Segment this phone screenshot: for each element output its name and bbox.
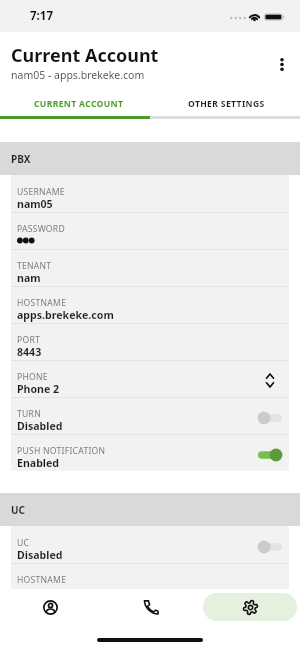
staticText: HOSTNAME xyxy=(17,297,67,309)
staticText: HOSTNAME xyxy=(17,574,67,586)
staticText: 7:17 xyxy=(30,8,53,24)
button[interactable]: CURRENT ACCOUNT xyxy=(0,95,150,119)
staticText: Disabled xyxy=(17,419,63,433)
staticText: PASSWORD xyxy=(17,223,65,235)
staticText: PUSH NOTIFICATION xyxy=(17,445,106,457)
button[interactable]: TURN xyxy=(11,397,289,434)
staticText: USERNAME xyxy=(17,186,65,198)
staticText: PORT xyxy=(17,334,41,346)
button[interactable]: OTHER SETTINGS xyxy=(150,95,300,119)
staticText: UC xyxy=(11,503,25,517)
staticText: nam xyxy=(17,271,41,285)
staticText: nam05 - apps.brekeke.com xyxy=(11,68,145,82)
staticText: apps.brekeke.com xyxy=(17,308,114,322)
button[interactable]: PHONE xyxy=(11,360,289,397)
button[interactable]: PORT xyxy=(11,323,289,360)
staticText: Enabled xyxy=(17,456,60,470)
button[interactable] xyxy=(257,411,283,425)
button[interactable]: TENANT xyxy=(11,249,289,286)
button[interactable]: PUSH NOTIFICATION xyxy=(11,434,289,471)
button[interactable]: USERNAME xyxy=(11,175,289,212)
staticText: TURN xyxy=(17,408,41,420)
staticText: CURRENT ACCOUNT xyxy=(34,98,124,110)
button[interactable]: PASSWORD xyxy=(11,212,289,249)
button[interactable]: Phone xyxy=(103,593,197,621)
staticText: OTHER SETTINGS xyxy=(188,98,265,110)
button[interactable]: Settings xyxy=(203,593,297,621)
button[interactable]: More options xyxy=(260,44,300,84)
button[interactable] xyxy=(257,540,283,554)
staticText: PHONE xyxy=(17,371,48,383)
button[interactable]: Account xyxy=(3,593,97,621)
staticText: Disabled xyxy=(17,548,63,562)
button[interactable]: UC xyxy=(11,526,289,563)
staticText: TENANT xyxy=(17,260,52,272)
staticText: Current Account xyxy=(11,43,159,68)
staticText: UC xyxy=(17,537,30,549)
staticText: 8443 xyxy=(17,345,42,359)
staticText: PBX xyxy=(11,152,31,166)
button[interactable]: HOSTNAME xyxy=(11,286,289,323)
staticText: Phone 2 xyxy=(17,382,60,396)
button[interactable]: HOSTNAME xyxy=(11,563,289,589)
button[interactable] xyxy=(257,448,283,462)
staticText: nam05 xyxy=(17,197,53,211)
